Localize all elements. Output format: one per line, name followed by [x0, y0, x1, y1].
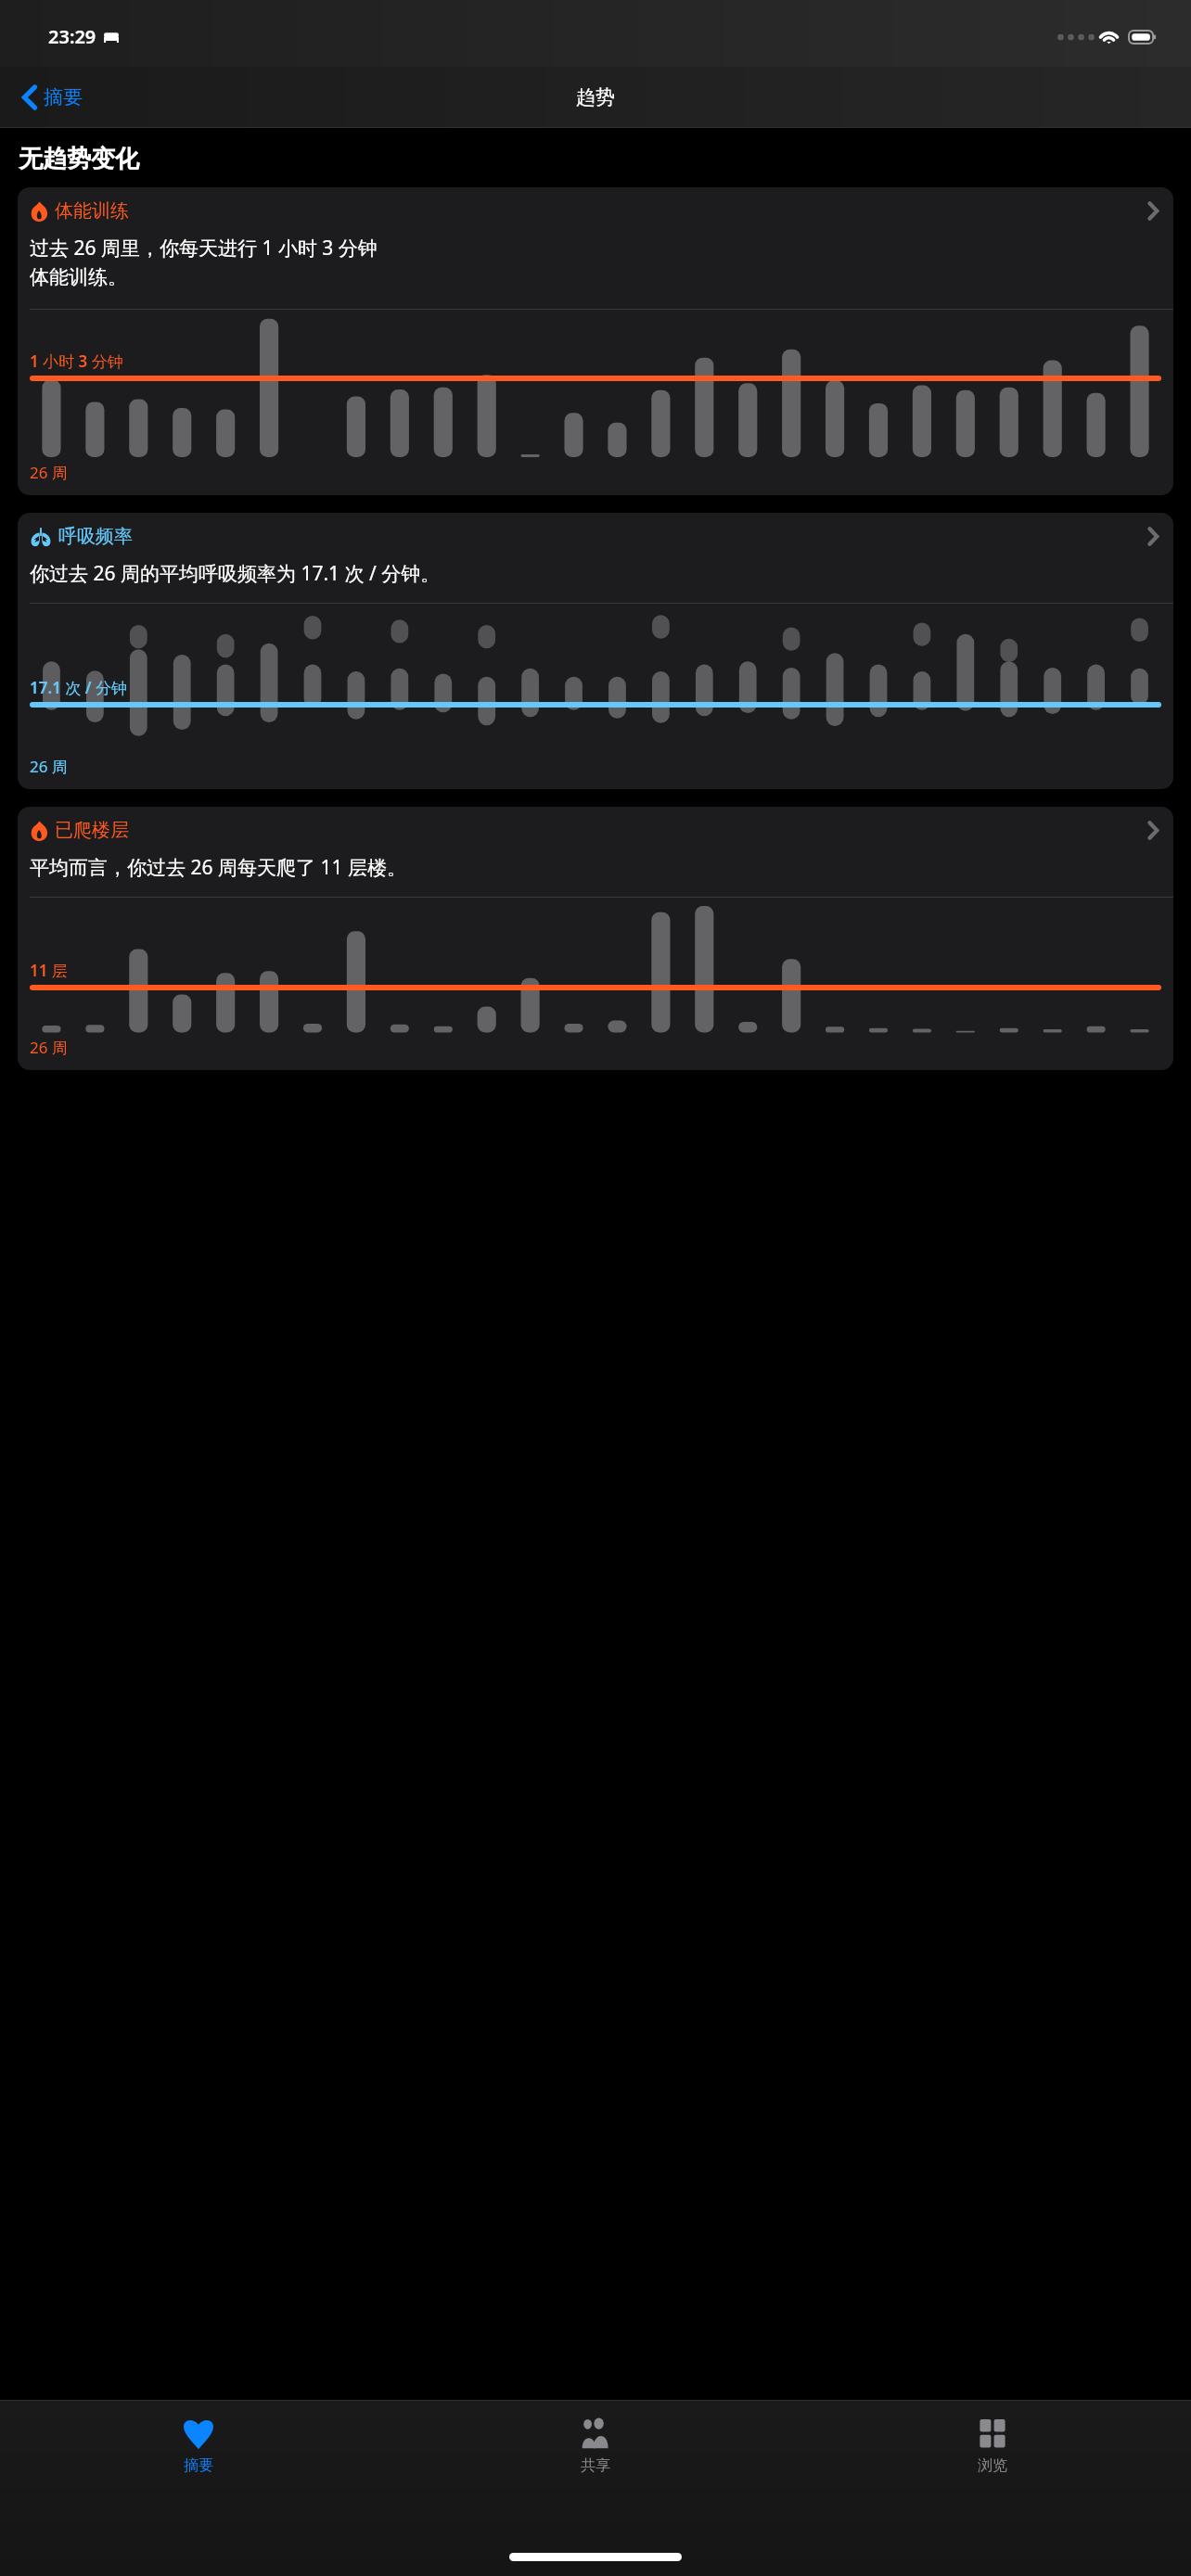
staticText: 平均而言，你过去 26 周每天爬了 11 层楼。: [30, 854, 406, 881]
staticText: 你过去 26 周的平均呼吸频率为 17.1 次 / 分钟。: [30, 560, 441, 587]
button[interactable]: 共享: [397, 2401, 794, 2519]
staticText: 体能训练: [55, 199, 129, 223]
staticText: 26 周: [30, 756, 68, 777]
other: 展开 呼吸频率: [1147, 526, 1159, 547]
other: 展开 已爬楼层: [1147, 820, 1159, 841]
staticText: 摘要: [44, 85, 83, 109]
staticText: 共享: [581, 2456, 610, 2475]
staticText: 趋势: [576, 85, 615, 109]
button[interactable]: 摘要: [17, 78, 88, 117]
button[interactable]: 呼吸频率: [18, 513, 1173, 789]
staticText: 摘要: [184, 2456, 213, 2475]
staticText: 呼吸频率: [58, 525, 133, 548]
staticText: 浏览: [978, 2456, 1007, 2475]
button[interactable]: 已爬楼层: [18, 807, 1173, 1070]
other: 展开 体能训练: [1147, 200, 1159, 222]
staticText: 11 层: [30, 960, 68, 981]
staticText: 26 周: [30, 462, 68, 483]
staticText: 已爬楼层: [55, 819, 129, 842]
button[interactable]: 摘要: [0, 2401, 397, 2519]
staticText: 无趋势变化: [19, 144, 139, 174]
staticText: 过去 26 周里，你每天进行 1 小时 3 分钟 体能训练。: [30, 235, 378, 289]
staticText: 17.1 次 / 分钟: [30, 677, 127, 698]
button[interactable]: 浏览: [794, 2401, 1191, 2519]
staticText: 1 小时 3 分钟: [30, 351, 123, 372]
button[interactable]: 体能训练: [18, 187, 1173, 495]
staticText: 26 周: [30, 1037, 68, 1058]
staticText: 23:29: [48, 24, 96, 49]
